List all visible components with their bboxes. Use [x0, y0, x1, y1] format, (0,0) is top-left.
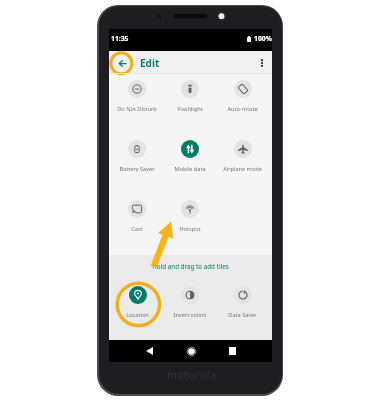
button[interactable]: Back — [141, 343, 157, 359]
button[interactable]: Do Not Disturb — [117, 80, 157, 113]
staticText: Location — [126, 311, 149, 319]
staticText: Data Saver — [228, 311, 257, 319]
staticText: 100% — [254, 34, 272, 43]
button[interactable]: Auto-rotate — [227, 80, 258, 113]
staticText: Cast — [131, 225, 143, 233]
staticText: Battery Saver — [119, 165, 155, 173]
staticText: motorola — [167, 368, 217, 382]
button[interactable]: Home — [183, 343, 199, 359]
button[interactable]: Data Saver — [228, 286, 257, 319]
staticText: Invert colors — [173, 311, 207, 319]
button[interactable]: Location — [126, 286, 149, 319]
button[interactable]: Invert colors — [173, 286, 207, 319]
button[interactable]: Airplane mode — [223, 140, 262, 173]
button[interactable]: Cast — [128, 200, 146, 233]
staticText: Auto-rotate — [227, 105, 258, 113]
button[interactable]: Back — [112, 53, 132, 73]
staticText: Mobile data — [174, 165, 206, 173]
staticText: Hold and drag to add tiles — [109, 262, 272, 270]
button[interactable]: Hotspot — [179, 200, 201, 233]
button[interactable]: Recent apps — [224, 343, 240, 359]
staticText: Edit — [140, 56, 160, 70]
staticText: Do Not Disturb — [117, 105, 157, 113]
staticText: Flashlight — [177, 105, 203, 113]
button[interactable]: Flashlight — [177, 80, 203, 113]
button[interactable]: Battery Saver — [119, 140, 155, 173]
staticText: Airplane mode — [223, 165, 262, 173]
button[interactable]: More options — [253, 54, 271, 72]
staticText: Hotspot — [179, 225, 201, 233]
button[interactable]: Mobile data — [174, 140, 206, 173]
staticText: 11:35 — [111, 34, 129, 43]
